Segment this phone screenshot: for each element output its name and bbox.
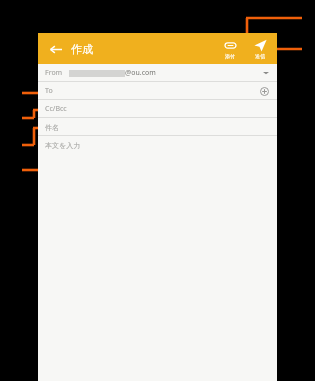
button[interactable]: Cc/Bcc	[38, 100, 277, 118]
button[interactable]: 連絡先を追加	[258, 85, 270, 97]
button[interactable]: From	[38, 64, 277, 82]
staticText: 本文を入力	[45, 141, 81, 150]
button[interactable]: 送信	[248, 37, 272, 61]
staticText: 件名	[45, 123, 59, 132]
staticText: 添付	[225, 53, 235, 59]
button[interactable]: 添付	[218, 37, 242, 61]
button[interactable]: 戻る	[44, 38, 66, 60]
staticText: To	[45, 86, 53, 96]
staticText: From	[45, 68, 63, 78]
button[interactable]: To	[38, 82, 277, 100]
staticText: 送信	[255, 53, 265, 59]
button[interactable]: 件名	[38, 118, 277, 136]
staticText: @ou.com	[125, 68, 156, 78]
staticText: Cc/Bcc	[45, 104, 67, 114]
staticText: 作成	[71, 42, 93, 56]
